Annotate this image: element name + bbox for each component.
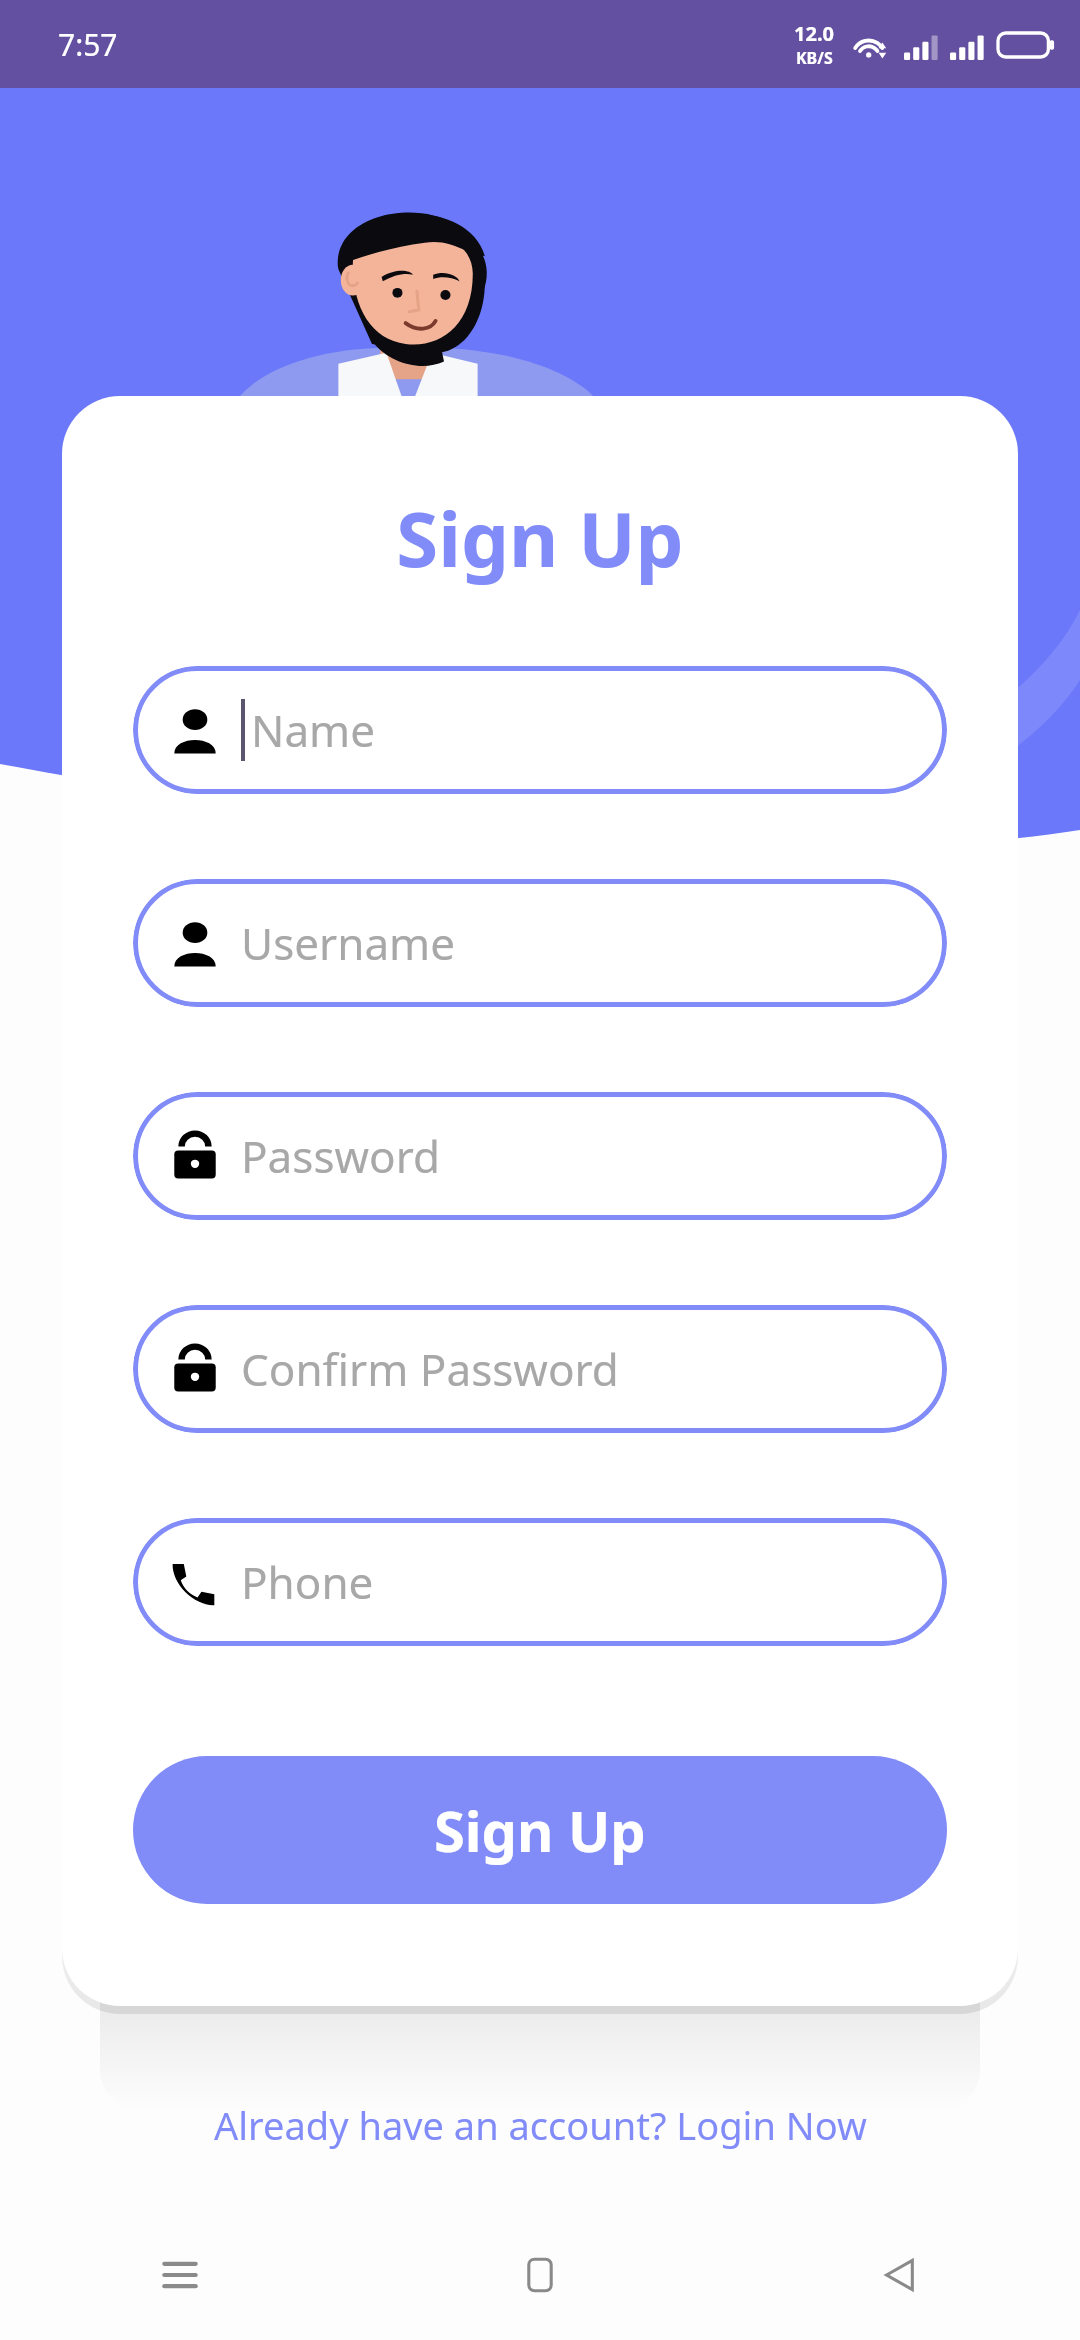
button[interactable]: Recent apps [0, 2210, 360, 2340]
staticText: Password [241, 1126, 441, 1186]
staticText: Sign Up [62, 486, 1018, 590]
staticText: Already have an account? Login Now [214, 2099, 867, 2151]
staticText: Username [241, 913, 456, 973]
staticText: Name [251, 700, 376, 760]
button[interactable]: Already have an account? Login Now [0, 2085, 1080, 2165]
staticText: 12.0 [794, 20, 834, 47]
button[interactable]: Password [133, 1092, 947, 1220]
button[interactable]: Name [133, 666, 947, 794]
button[interactable]: Sign Up [133, 1756, 947, 1904]
button[interactable]: Username [133, 879, 947, 1007]
staticText: Sign Up [434, 1792, 646, 1868]
button[interactable]: Back [720, 2210, 1080, 2340]
button[interactable]: Phone [133, 1518, 947, 1646]
button[interactable]: Home [360, 2210, 720, 2340]
staticText: Confirm Password [241, 1339, 619, 1399]
button[interactable]: Confirm Password [133, 1305, 947, 1433]
staticText: KB/S [796, 47, 833, 69]
staticText: 7:57 [58, 24, 118, 65]
staticText: Phone [241, 1552, 374, 1612]
